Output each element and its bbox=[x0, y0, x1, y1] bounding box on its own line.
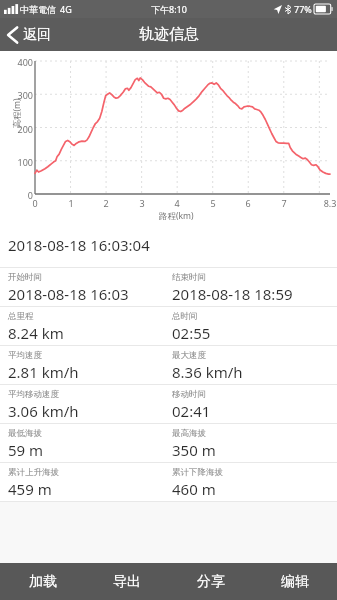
staticText: 导出 bbox=[113, 573, 141, 591]
staticText: 300 bbox=[8, 89, 33, 101]
staticText: 350 m bbox=[172, 440, 216, 460]
staticText: 02:41 bbox=[172, 401, 211, 421]
staticText: 轨迹信息 bbox=[139, 25, 199, 44]
staticText: 加载 bbox=[29, 573, 57, 591]
button[interactable]: 返回 bbox=[0, 18, 61, 51]
staticText: 路程(km) bbox=[159, 210, 194, 222]
staticText: 最高海拔 bbox=[172, 428, 206, 439]
staticText: 0 bbox=[8, 189, 33, 201]
staticText: 77% bbox=[294, 3, 312, 15]
staticText: 1 bbox=[60, 197, 82, 209]
staticText: 7 bbox=[273, 197, 295, 209]
staticText: 2018-08-18 16:03:04 bbox=[8, 235, 150, 255]
staticText: 100 bbox=[8, 156, 33, 168]
button[interactable]: 加载 bbox=[0, 563, 85, 600]
staticText: 结束时间 bbox=[172, 272, 206, 283]
staticText: 200 bbox=[8, 123, 33, 135]
staticText: 8.36 km/h bbox=[172, 362, 243, 382]
staticText: 6 bbox=[237, 197, 259, 209]
button[interactable]: 编辑 bbox=[253, 563, 337, 600]
staticText: 400 bbox=[8, 56, 33, 68]
staticText: 开始时间 bbox=[8, 272, 42, 283]
button[interactable]: 导出 bbox=[85, 563, 169, 600]
staticText: 总里程 bbox=[8, 311, 34, 322]
staticText: 总时间 bbox=[172, 311, 198, 322]
staticText: 59 m bbox=[8, 440, 44, 460]
staticText: 下午8:10 bbox=[151, 3, 187, 15]
staticText: 分享 bbox=[197, 573, 225, 591]
staticText: 2018-08-18 16:03 bbox=[8, 284, 129, 304]
staticText: 最大速度 bbox=[172, 350, 206, 361]
staticText: 2.81 km/h bbox=[8, 362, 79, 382]
staticText: 4 bbox=[166, 197, 188, 209]
staticText: 累计下降海拔 bbox=[172, 467, 223, 478]
staticText: 最低海拔 bbox=[8, 428, 42, 439]
staticText: 460 m bbox=[172, 479, 216, 499]
staticText: 4G bbox=[60, 3, 72, 15]
staticText: 8.3 bbox=[319, 197, 337, 209]
staticText: 2018-08-18 18:59 bbox=[172, 284, 293, 304]
staticText: 高程(m) bbox=[10, 97, 22, 128]
staticText: 02:55 bbox=[172, 323, 211, 343]
staticText: 0 bbox=[24, 197, 46, 209]
staticText: 编辑 bbox=[281, 573, 309, 591]
staticText: 3 bbox=[131, 197, 153, 209]
staticText: 移动时间 bbox=[172, 389, 206, 400]
staticText: 平均速度 bbox=[8, 350, 42, 361]
staticText: 2 bbox=[95, 197, 117, 209]
button[interactable]: 分享 bbox=[169, 563, 253, 600]
staticText: 平均移动速度 bbox=[8, 389, 59, 400]
staticText: 5 bbox=[202, 197, 224, 209]
staticText: 459 m bbox=[8, 479, 52, 499]
staticText: 累计上升海拔 bbox=[8, 467, 59, 478]
staticText: 中華電信 bbox=[20, 4, 56, 15]
staticText: 3.06 km/h bbox=[8, 401, 79, 421]
staticText: 返回 bbox=[23, 26, 51, 44]
staticText: 8.24 km bbox=[8, 323, 64, 343]
